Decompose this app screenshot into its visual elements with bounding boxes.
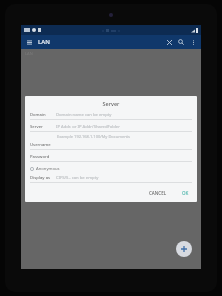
staticText: Username (30, 142, 56, 148)
staticText: CIFS/S.. can be empty (56, 175, 99, 181)
button[interactable]: Search (175, 36, 187, 48)
staticText: LAN (38, 38, 50, 46)
button[interactable]: More options (187, 36, 199, 48)
staticText: Server (30, 124, 56, 130)
staticText: Display as (30, 175, 56, 181)
staticText: Anonymous (36, 166, 60, 172)
button[interactable]: Add server (176, 241, 192, 257)
button[interactable]: OK (179, 189, 192, 197)
staticText: IP Addr. or IP Addr/SharedFolder (56, 124, 120, 130)
button[interactable]: CANCEL (146, 189, 170, 197)
staticText: Example 192.168.1.100/My Documents (57, 134, 130, 139)
staticText: Server (30, 100, 192, 107)
button[interactable]: Anonymous (30, 166, 60, 172)
staticText: Domain name can be empty (56, 112, 112, 118)
button[interactable]: Open navigation drawer (24, 37, 34, 47)
staticText: OK (182, 190, 189, 196)
staticText: Domain (30, 112, 56, 118)
staticText: LAN (25, 51, 33, 56)
staticText: CANCEL (149, 190, 167, 196)
staticText: Password (30, 154, 56, 160)
button[interactable]: Close (163, 36, 175, 48)
